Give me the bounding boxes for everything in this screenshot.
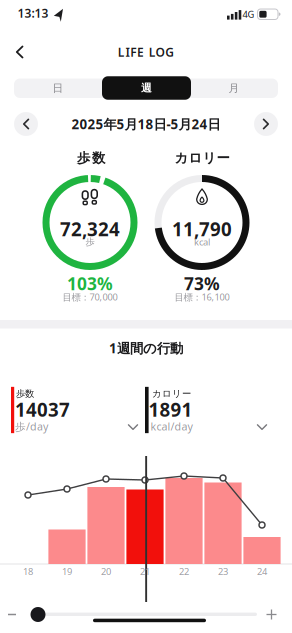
- button[interactable]: Back: [5, 37, 34, 66]
- staticText: 4G: [242, 8, 254, 20]
- staticText: 20: [101, 565, 111, 578]
- staticText: LIFE LOG: [118, 44, 174, 60]
- staticText: 18: [23, 565, 33, 578]
- staticText: 月: [228, 82, 239, 95]
- staticText: 歩/day: [15, 419, 48, 434]
- staticText: 22: [179, 565, 189, 578]
- button[interactable]: 歩数: [11, 387, 143, 433]
- button[interactable]: Next week: [254, 112, 278, 136]
- staticText: 歩数: [77, 150, 105, 166]
- staticText: kcal/day: [150, 419, 192, 434]
- staticText: 歩数: [16, 388, 34, 399]
- staticText: 11,790: [172, 217, 232, 241]
- staticText: 2025年5月18日-5月24日: [71, 115, 220, 133]
- staticText: 14037: [15, 397, 70, 422]
- staticText: 21: [140, 565, 150, 578]
- button[interactable]: Slider: [30, 607, 45, 622]
- button[interactable]: 日: [14, 78, 102, 98]
- staticText: 1週間の行動: [109, 339, 183, 357]
- staticText: kcal: [194, 236, 210, 248]
- button[interactable]: Previous week: [14, 112, 38, 136]
- staticText: 72,324: [60, 217, 120, 241]
- staticText: 23: [218, 565, 228, 578]
- button[interactable]: カロリー: [145, 387, 277, 433]
- staticText: 目標：70,000: [62, 291, 117, 303]
- staticText: 19: [62, 565, 72, 578]
- staticText: 13:13: [17, 5, 48, 21]
- staticText: 週: [141, 81, 152, 94]
- staticText: カロリー: [152, 388, 191, 399]
- button[interactable]: Zoom in: [266, 609, 276, 619]
- staticText: 73%: [184, 272, 220, 295]
- staticText: カロリー: [174, 150, 229, 166]
- staticText: 24: [257, 565, 267, 578]
- button[interactable]: 月: [190, 78, 278, 98]
- button[interactable]: 週: [102, 76, 191, 100]
- staticText: 1891: [149, 397, 193, 422]
- staticText: 目標：16,100: [174, 291, 229, 303]
- staticText: 103%: [67, 272, 113, 295]
- staticText: 歩: [85, 236, 94, 248]
- staticText: 日: [52, 82, 63, 95]
